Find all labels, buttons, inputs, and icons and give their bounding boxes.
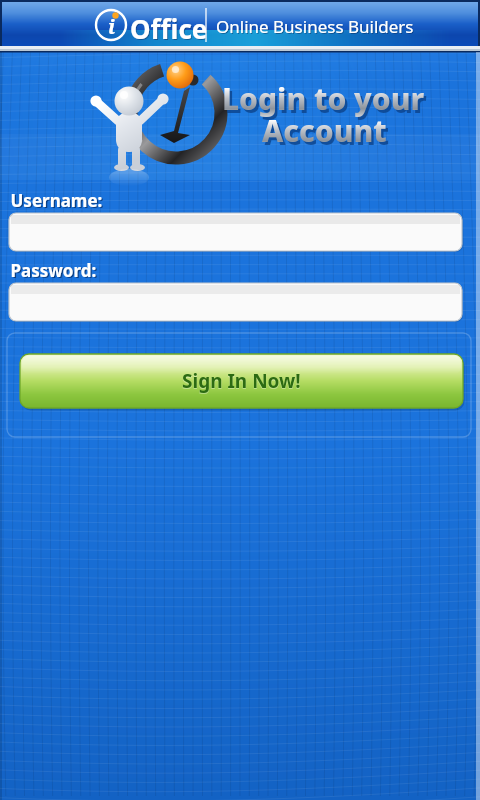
button[interactable]: Username input field	[9, 213, 462, 251]
button[interactable]: iOffice Online Business Builders	[94, 4, 394, 48]
button[interactable]: Password input field	[9, 283, 462, 321]
button[interactable]: Sign In Now!	[20, 354, 463, 408]
